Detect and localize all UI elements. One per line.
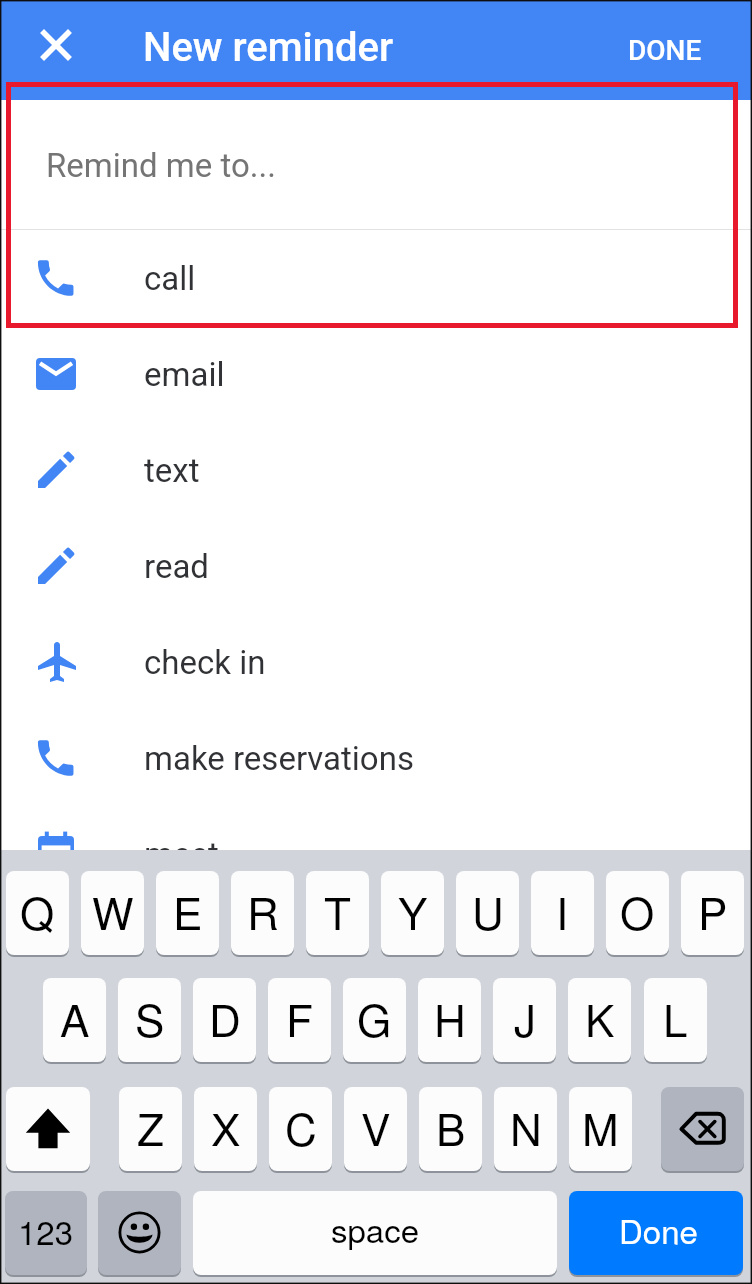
button[interactable]: Y: [381, 871, 444, 955]
staticText: DONE: [628, 34, 702, 67]
staticText: email: [144, 355, 225, 394]
button[interactable]: A: [43, 978, 106, 1062]
button[interactable]: G: [343, 978, 406, 1062]
staticText: F: [286, 986, 313, 1049]
button[interactable]: space: [193, 1191, 557, 1275]
button[interactable]: W: [81, 871, 144, 955]
button[interactable]: Z: [119, 1087, 182, 1171]
staticText: X: [211, 1095, 241, 1158]
staticText: space: [331, 1205, 420, 1252]
staticText: meet: [144, 835, 219, 874]
button[interactable]: K: [568, 978, 631, 1062]
button[interactable]: H: [418, 978, 481, 1062]
staticText: P: [698, 879, 728, 942]
staticText: M: [582, 1095, 619, 1158]
button[interactable]: make reservations: [0, 710, 752, 806]
staticText: V: [361, 1095, 391, 1158]
button[interactable]: T: [306, 871, 369, 955]
staticText: Y: [398, 879, 428, 942]
staticText: C: [285, 1095, 317, 1158]
button[interactable]: email: [0, 326, 752, 422]
button[interactable]: F: [268, 978, 331, 1062]
staticText: Remind me to...: [46, 146, 276, 185]
button[interactable]: R: [231, 871, 294, 955]
staticText: Done: [619, 1206, 698, 1253]
staticText: Z: [137, 1095, 164, 1158]
button[interactable]: N: [494, 1087, 557, 1171]
staticText: read: [144, 547, 209, 586]
button[interactable]: meet: [0, 806, 752, 902]
staticText: U: [472, 879, 504, 942]
button[interactable]: X: [194, 1087, 257, 1171]
staticText: call: [144, 259, 196, 298]
button[interactable]: Backspace: [661, 1087, 744, 1171]
staticText: I: [556, 879, 569, 942]
button[interactable]: Shift: [6, 1087, 90, 1171]
staticText: New reminder: [143, 24, 394, 71]
staticText: check in: [144, 643, 266, 682]
button[interactable]: C: [269, 1087, 332, 1171]
button[interactable]: text: [0, 422, 752, 518]
button[interactable]: Close: [28, 17, 84, 73]
button[interactable]: Q: [6, 871, 69, 955]
button[interactable]: Emoji: [98, 1191, 181, 1275]
staticText: W: [92, 879, 134, 942]
button[interactable]: M: [569, 1087, 632, 1171]
button[interactable]: call: [0, 230, 752, 326]
button[interactable]: D: [193, 978, 256, 1062]
staticText: Q: [20, 879, 55, 942]
button[interactable]: DONE: [599, 14, 752, 87]
staticText: L: [663, 986, 688, 1049]
button[interactable]: Numbers: [5, 1191, 87, 1275]
staticText: make reservations: [144, 739, 414, 778]
button[interactable]: E: [156, 871, 219, 955]
staticText: R: [247, 879, 279, 942]
button[interactable]: J: [493, 978, 556, 1062]
button[interactable]: P: [681, 871, 744, 955]
button[interactable]: Reminder text field: [0, 100, 752, 229]
button[interactable]: B: [419, 1087, 482, 1171]
button[interactable]: U: [456, 871, 519, 955]
button[interactable]: I: [531, 871, 594, 955]
staticText: H: [434, 986, 466, 1049]
staticText: O: [620, 879, 655, 942]
button[interactable]: S: [118, 978, 181, 1062]
staticText: B: [436, 1095, 466, 1158]
staticText: T: [324, 879, 351, 942]
staticText: K: [585, 986, 615, 1049]
button[interactable]: O: [606, 871, 669, 955]
staticText: E: [173, 879, 203, 942]
button[interactable]: check in: [0, 614, 752, 710]
button[interactable]: V: [344, 1087, 407, 1171]
staticText: J: [514, 986, 536, 1049]
staticText: S: [135, 986, 165, 1049]
staticText: A: [60, 986, 90, 1049]
staticText: 123: [18, 1207, 74, 1254]
button[interactable]: read: [0, 518, 752, 614]
staticText: G: [357, 986, 392, 1049]
staticText: N: [510, 1095, 542, 1158]
staticText: D: [209, 986, 241, 1049]
button[interactable]: L: [644, 978, 707, 1062]
staticText: text: [144, 451, 200, 490]
button[interactable]: Done: [569, 1191, 743, 1275]
